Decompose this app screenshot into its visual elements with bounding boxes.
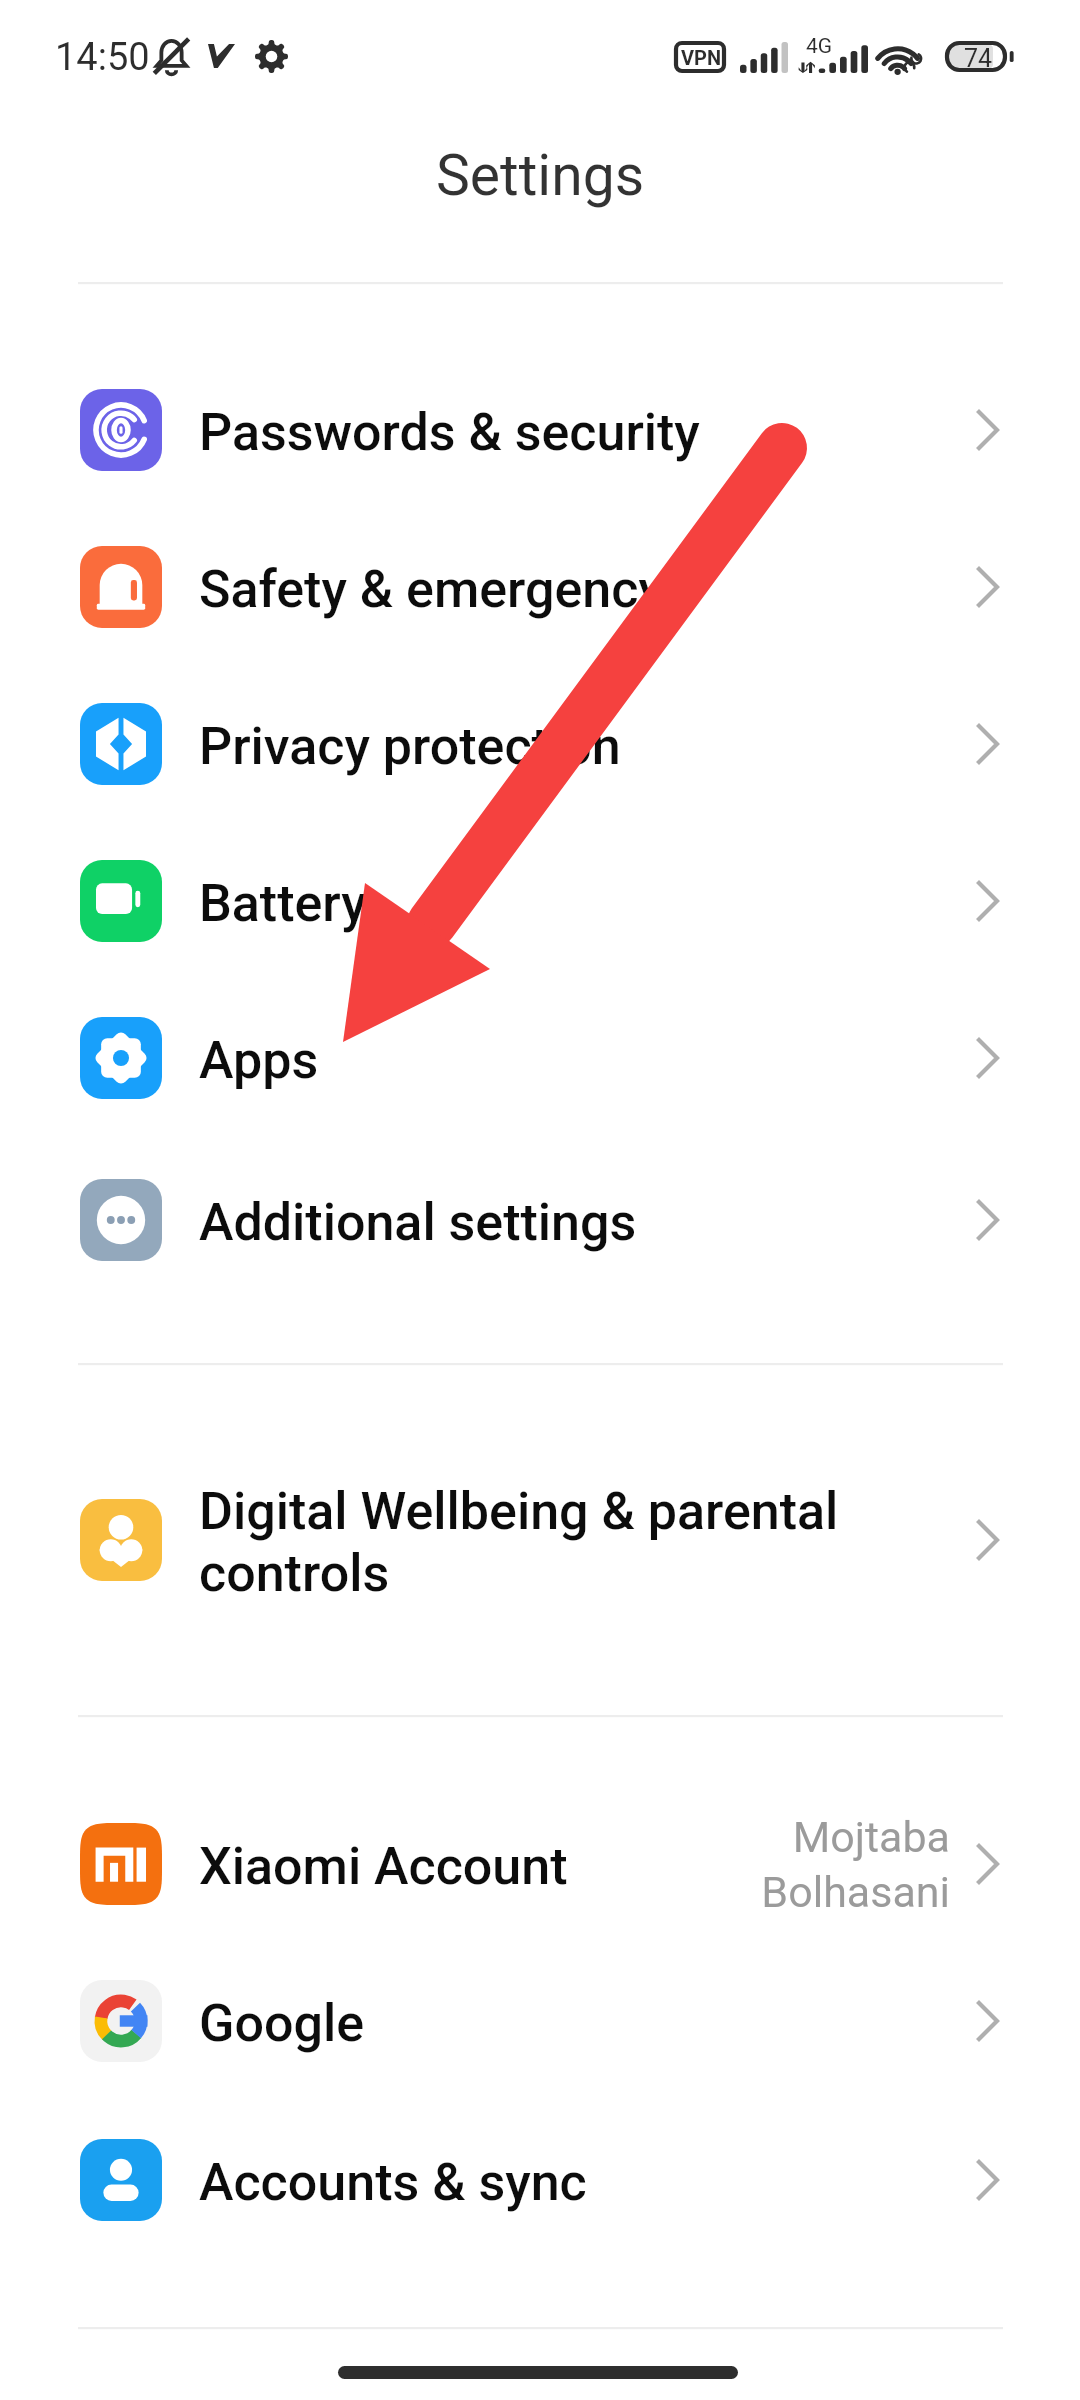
staticText: Battery (199, 873, 367, 934)
staticText: VPN (681, 46, 722, 69)
staticText: Mojtaba Bolhasani (700, 1812, 950, 1917)
staticText: Google (199, 1993, 365, 2054)
staticText: Digital Wellbeing & parental controls (199, 1481, 849, 1604)
button[interactable]: Passwords & security (0, 352, 1080, 508)
button[interactable]: Apps (0, 980, 1080, 1136)
staticText: 74 (964, 44, 993, 73)
button[interactable]: Additional settings (0, 1142, 1080, 1298)
staticText: Xiaomi Account (199, 1836, 568, 1897)
button[interactable]: Google (0, 1943, 1080, 2099)
button[interactable]: Privacy protection (0, 666, 1080, 822)
staticText: Settings (436, 142, 645, 209)
staticText: Accounts & sync (199, 2152, 587, 2213)
staticText: Additional settings (199, 1192, 637, 1253)
button[interactable]: Battery (0, 823, 1080, 979)
button[interactable]: Accounts & sync (0, 2102, 1080, 2258)
staticText: 14:50 (55, 35, 150, 80)
staticText: 4G (806, 34, 833, 59)
button[interactable]: Digital Wellbeing & parental controls (0, 1462, 1080, 1618)
staticText: Apps (199, 1030, 319, 1091)
staticText: Passwords & security (199, 402, 700, 463)
staticText: Safety & emergency (199, 559, 664, 620)
button[interactable]: Xiaomi Account (0, 1786, 1080, 1942)
button[interactable]: Safety & emergency (0, 509, 1080, 665)
staticText: Privacy protection (199, 716, 621, 777)
